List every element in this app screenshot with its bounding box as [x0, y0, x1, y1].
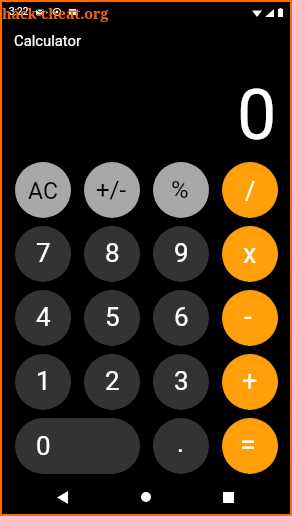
button[interactable]: 9	[153, 226, 209, 282]
button[interactable]: 3	[153, 354, 209, 410]
button[interactable]: 5	[84, 290, 140, 346]
staticText: Calculator	[14, 32, 81, 49]
staticText: 3:22	[9, 6, 29, 18]
button[interactable]: +/-	[84, 162, 140, 218]
staticText: +	[242, 365, 258, 397]
button[interactable]: 2	[84, 354, 140, 410]
staticText: .	[177, 428, 184, 458]
staticText: hack-cheat.org	[2, 4, 109, 23]
button[interactable]: 6	[153, 290, 209, 346]
button[interactable]: +	[222, 354, 278, 410]
staticText: 7	[36, 238, 51, 268]
staticText: /	[245, 177, 256, 206]
button[interactable]: Home	[134, 485, 158, 509]
staticText: AC	[28, 178, 58, 205]
staticText: 9	[174, 238, 189, 268]
staticText: 6	[174, 302, 189, 332]
button[interactable]: -	[222, 290, 278, 346]
staticText: %	[171, 176, 189, 204]
staticText: =	[240, 428, 256, 462]
button[interactable]: .	[153, 418, 209, 474]
button[interactable]: 1	[15, 354, 71, 410]
staticText: x	[243, 238, 257, 270]
button[interactable]: Back	[50, 485, 74, 509]
staticText: 1	[36, 366, 51, 396]
button[interactable]: AC	[15, 162, 71, 218]
button[interactable]: 8	[84, 226, 140, 282]
staticText: +/-	[96, 176, 127, 204]
button[interactable]: x	[222, 226, 278, 282]
button[interactable]: 4	[15, 290, 71, 346]
staticText: 4	[36, 302, 51, 332]
staticText: 3	[174, 366, 189, 396]
staticText: 2	[105, 366, 120, 396]
button[interactable]: 7	[15, 226, 71, 282]
staticText: 0	[237, 74, 277, 156]
button[interactable]: /	[222, 162, 278, 218]
staticText: 5	[105, 302, 120, 332]
button[interactable]: %	[153, 162, 209, 218]
button[interactable]: =	[222, 418, 278, 474]
button[interactable]: 0	[15, 418, 140, 474]
staticText: -	[244, 300, 252, 333]
button[interactable]: Recent apps	[216, 485, 240, 509]
staticText: 8	[105, 238, 120, 268]
staticText: 0	[36, 431, 51, 461]
